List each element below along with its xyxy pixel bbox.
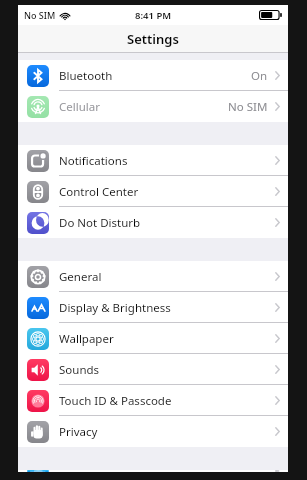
button[interactable]: General [18, 261, 288, 292]
staticText: General [59, 269, 102, 285]
staticText: Settings [127, 30, 179, 48]
button[interactable]: Cellular [18, 91, 288, 122]
staticText: Display & Brightness [59, 300, 171, 316]
staticText: No SIM [228, 99, 268, 115]
button[interactable]: Wallpaper [18, 323, 288, 354]
button[interactable]: Notifications [18, 145, 288, 176]
button[interactable]: Bluetooth [18, 60, 288, 91]
button[interactable]: iCloud [18, 470, 288, 472]
button[interactable]: Touch ID & Passcode [18, 385, 288, 416]
staticText: Cellular [59, 99, 100, 115]
staticText: Sounds [59, 362, 100, 378]
staticText: Touch ID & Passcode [59, 393, 172, 409]
button[interactable]: Control Center [18, 176, 288, 207]
staticText: On [251, 68, 268, 84]
staticText: Control Center [59, 184, 139, 200]
button[interactable]: Display & Brightness [18, 292, 288, 323]
button[interactable]: Privacy [18, 416, 288, 447]
button[interactable]: Do Not Disturb [18, 207, 288, 238]
staticText: No SIM [24, 9, 56, 21]
staticText: Bluetooth [59, 68, 113, 84]
button[interactable]: Sounds [18, 354, 288, 385]
staticText: 8:41 PM [135, 9, 172, 22]
staticText: Do Not Disturb [59, 215, 141, 231]
staticText: Privacy [59, 424, 98, 440]
staticText: Notifications [59, 153, 128, 169]
staticText: Wallpaper [59, 331, 114, 347]
